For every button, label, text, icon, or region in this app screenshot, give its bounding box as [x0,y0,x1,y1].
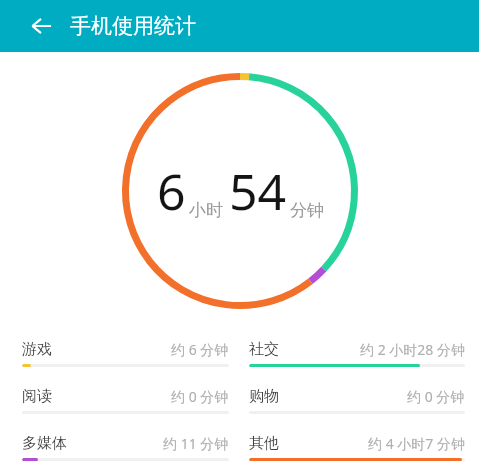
staticText: 购物 [249,387,279,406]
button[interactable]: Back [20,5,62,47]
staticText: 分钟 [290,200,324,221]
staticText: 小时 [189,200,223,221]
button[interactable]: 购物 [249,377,465,424]
staticText: 其他 [249,434,279,453]
staticText: 多媒体 [22,434,67,453]
button[interactable]: 其他 [249,424,465,465]
staticText: 约 2 小时28 分钟 [360,340,465,359]
staticText: 手机使用统计 [70,13,196,39]
staticText: 54 [229,157,287,225]
button[interactable]: 游戏 [22,330,229,377]
staticText: 约 6 分钟 [171,340,229,359]
staticText: 游戏 [22,340,52,359]
staticText: 约 0 分钟 [407,387,465,406]
staticText: 约 11 分钟 [163,434,229,453]
staticText: 阅读 [22,387,52,406]
button[interactable]: 多媒体 [22,424,229,465]
button[interactable]: 阅读 [22,377,229,424]
button[interactable]: 社交 [249,330,465,377]
staticText: 约 4 小时7 分钟 [368,434,465,453]
staticText: 6 [157,157,186,225]
staticText: 社交 [249,340,279,359]
staticText: 约 0 分钟 [171,387,229,406]
